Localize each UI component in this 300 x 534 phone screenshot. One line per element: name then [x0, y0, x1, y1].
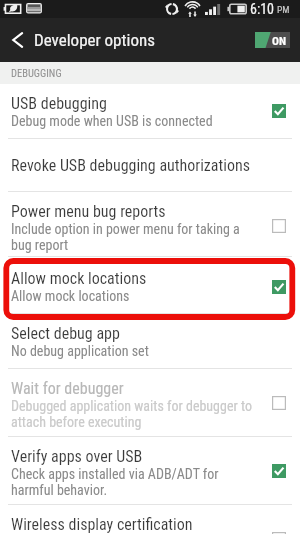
staticText: Wireless display certification: [11, 515, 193, 534]
staticText: Check apps installed via ADB/ADT for har…: [11, 466, 255, 498]
button[interactable]: Power menu bug reports: [0, 192, 300, 257]
staticText: PM: [277, 4, 290, 15]
button[interactable]: USB debugging: [0, 84, 300, 139]
staticText: USB debugging: [11, 94, 107, 113]
staticText: Debugged application waits for debugger …: [11, 398, 255, 430]
staticText: Power menu bug reports: [11, 202, 166, 221]
button[interactable]: Select debug app: [0, 314, 300, 369]
staticText: Allow mock locations: [11, 269, 147, 288]
button[interactable]: Developer options on: [255, 32, 290, 48]
staticText: Allow mock locations: [11, 288, 130, 304]
staticText: 6:10: [250, 1, 275, 17]
button[interactable]: Allow mock locations: [0, 257, 300, 314]
staticText: ON: [272, 34, 286, 47]
button[interactable]: Wait for debugger: [0, 369, 300, 437]
button[interactable]: Navigate up: [0, 18, 34, 62]
button[interactable]: Wireless display certification: [0, 505, 300, 534]
staticText: Developer options: [34, 30, 155, 50]
staticText: Include option in power menu for taking …: [11, 221, 255, 253]
staticText: Select debug app: [11, 324, 120, 343]
staticText: Wait for debugger: [11, 379, 124, 398]
staticText: No debug application set: [11, 343, 149, 359]
button[interactable]: Revoke USB debugging authorizations: [0, 139, 300, 192]
button[interactable]: Verify apps over USB: [0, 437, 300, 505]
staticText: Debug mode when USB is connected: [11, 113, 213, 129]
staticText: Revoke USB debugging authorizations: [11, 156, 250, 175]
staticText: Verify apps over USB: [11, 447, 143, 466]
staticText: DEBUGGING: [11, 67, 62, 79]
